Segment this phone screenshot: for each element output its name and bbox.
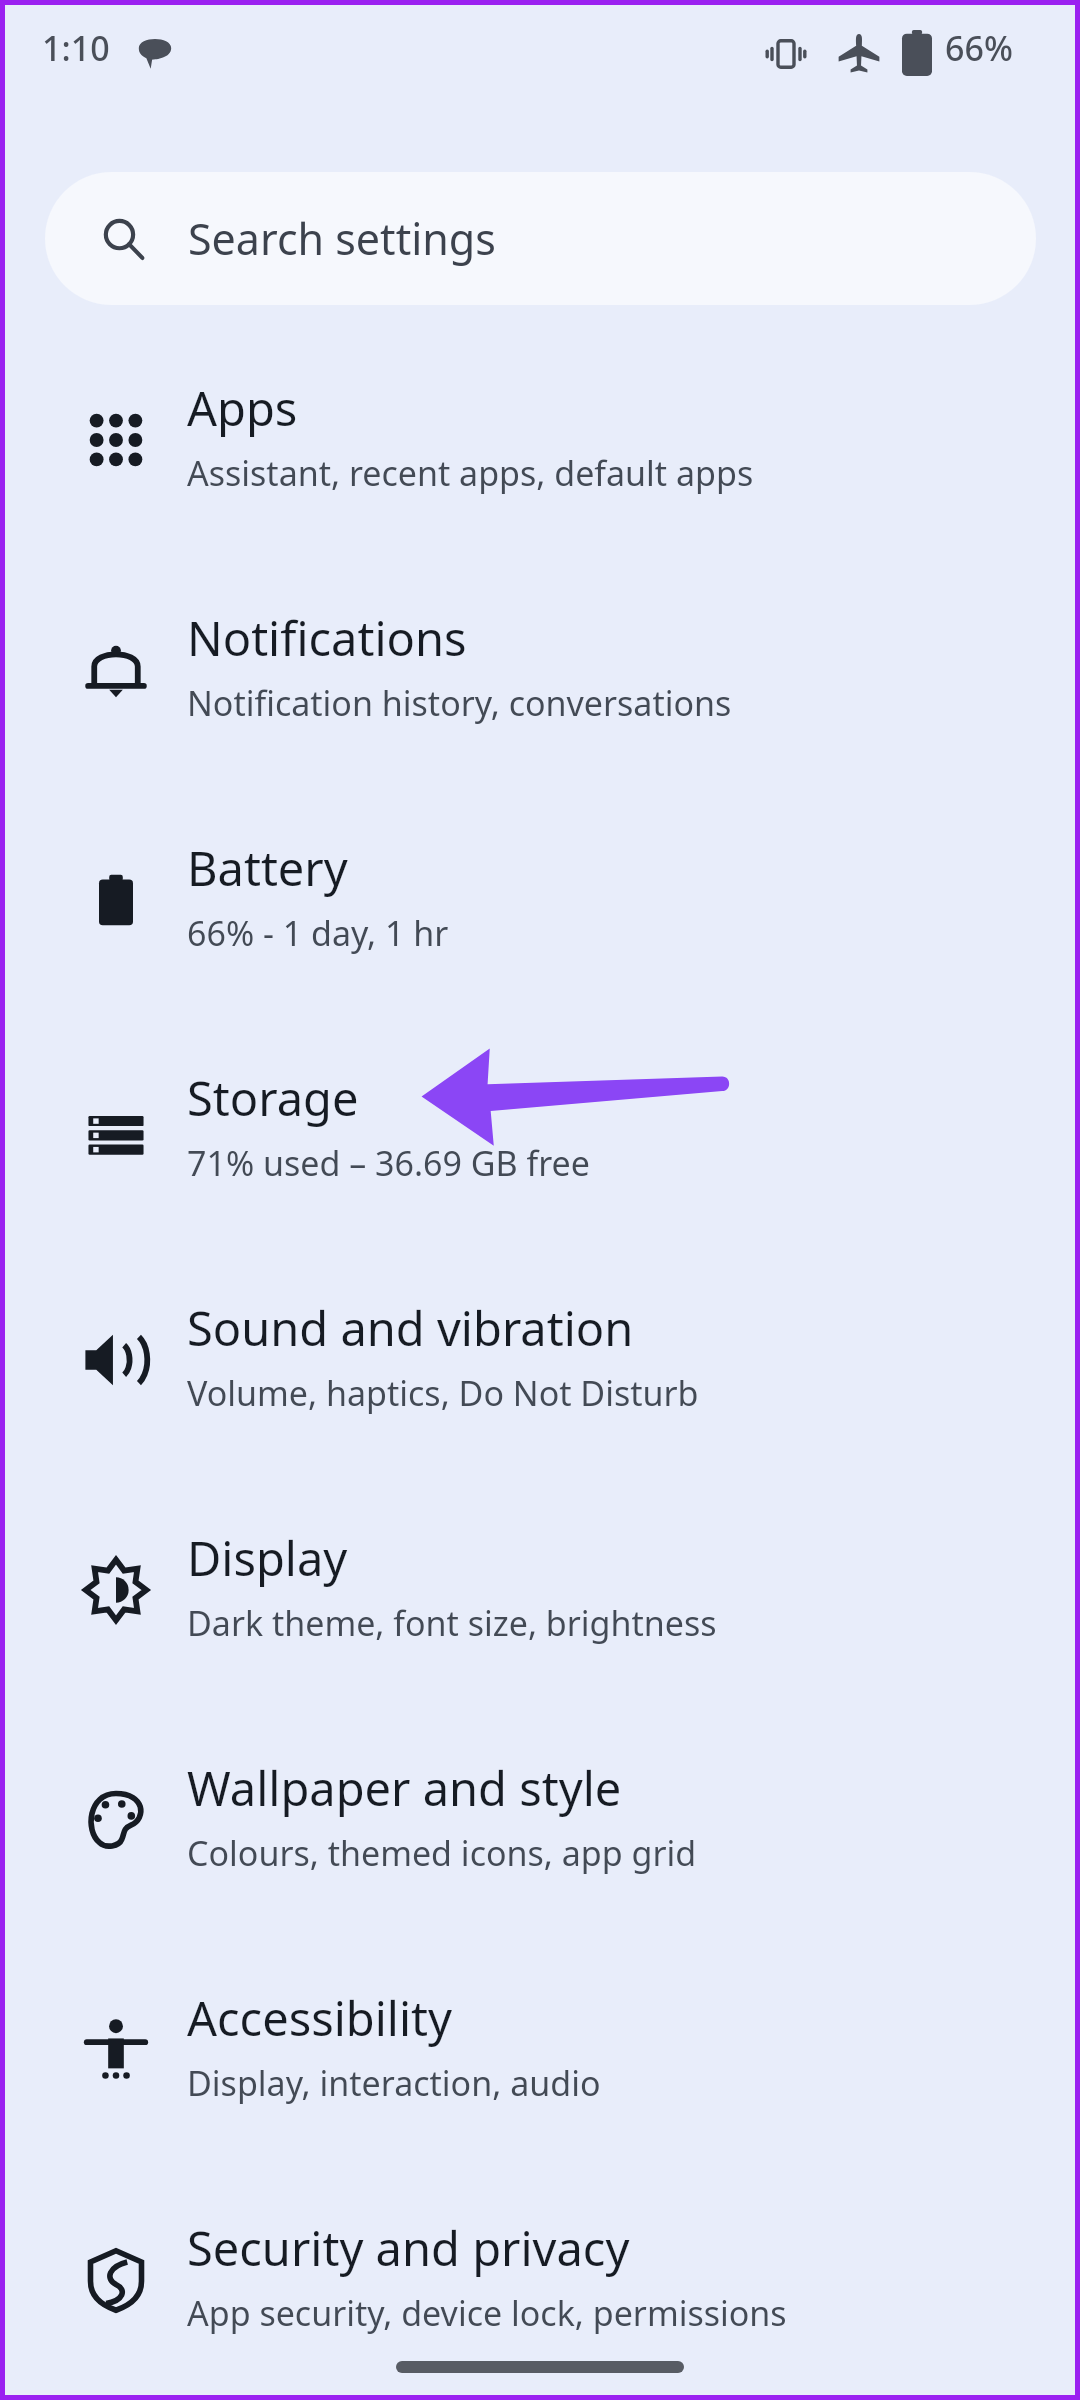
button[interactable]: Sound and vibration: [0, 1286, 1080, 1516]
staticText: Search settings: [188, 209, 496, 268]
staticText: Dark theme, font size, brightness: [187, 1600, 717, 1646]
staticText: Colours, themed icons, app grid: [187, 1830, 697, 1876]
staticText: Apps: [187, 376, 298, 440]
staticText: Volume, haptics, Do Not Disturb: [187, 1370, 699, 1416]
staticText: Notification history, conversations: [187, 680, 732, 726]
staticText: Storage: [187, 1066, 359, 1130]
staticText: Security and privacy: [187, 2216, 630, 2280]
staticText: Battery: [187, 836, 348, 900]
other: Storage highlight arrow: [420, 1040, 730, 1152]
staticText: Assistant, recent apps, default apps: [187, 450, 754, 496]
staticText: Display, interaction, audio: [187, 2060, 601, 2106]
staticText: Sound and vibration: [187, 1296, 634, 1360]
button[interactable]: Wallpaper and style: [0, 1746, 1080, 1976]
staticText: 66% - 1 day, 1 hr: [187, 910, 449, 956]
button[interactable]: Display: [0, 1516, 1080, 1746]
button[interactable]: Search settings: [45, 172, 1036, 305]
staticText: Notifications: [187, 606, 467, 670]
button[interactable]: Battery: [0, 826, 1080, 1056]
staticText: Display: [187, 1526, 348, 1590]
button[interactable]: Accessibility: [0, 1976, 1080, 2206]
staticText: 66%: [945, 25, 1013, 71]
staticText: Accessibility: [187, 1986, 453, 2050]
staticText: 1:10: [42, 25, 110, 71]
staticText: Wallpaper and style: [187, 1756, 622, 1820]
staticText: App security, device lock, permissions: [187, 2290, 787, 2336]
staticText: 71% used – 36.69 GB free: [187, 1140, 590, 1186]
button[interactable]: Notifications: [0, 596, 1080, 826]
button[interactable]: Security and privacy: [0, 2206, 1080, 2400]
button[interactable]: Apps: [0, 366, 1080, 596]
button[interactable]: Storage: [0, 1056, 1080, 1286]
